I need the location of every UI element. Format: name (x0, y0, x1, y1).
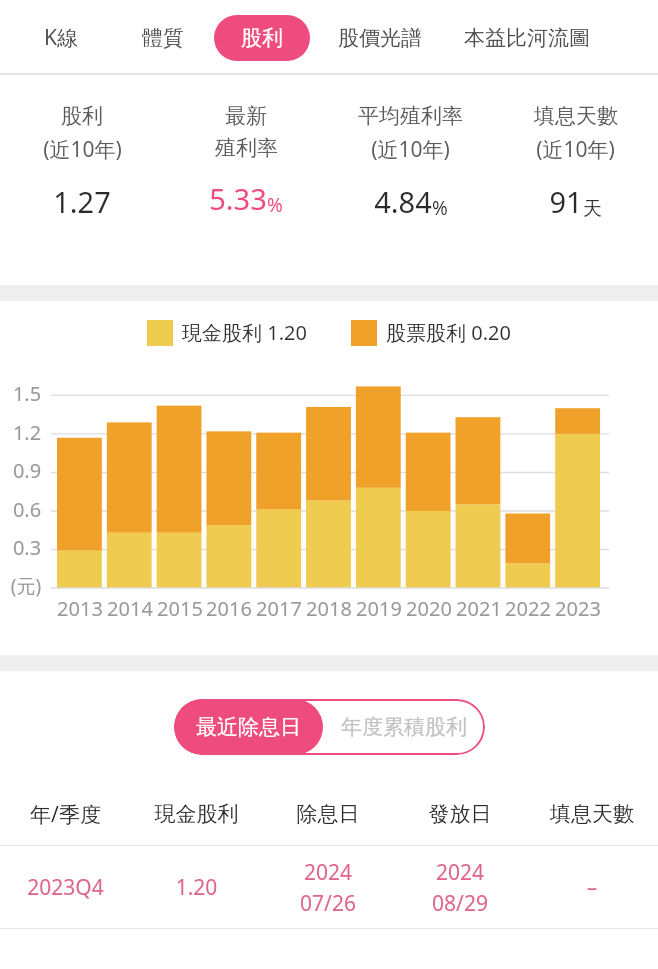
button[interactable]: 體質 (128, 17, 198, 59)
staticText: 體質 (142, 25, 184, 51)
staticText: 股票股利 0.20 (386, 319, 511, 346)
staticText: 發放日 (394, 801, 526, 827)
staticText: (近10年) (536, 135, 615, 164)
staticText: 2018 (304, 595, 354, 622)
staticText: 年度累積股利 (341, 714, 467, 740)
staticText: 填息天數 (526, 801, 658, 827)
button[interactable]: 最新 (164, 103, 328, 218)
staticText: 2014 (105, 595, 155, 622)
button[interactable]: 股利 (0, 103, 164, 221)
staticText: 股利 (61, 103, 103, 129)
button[interactable]: 平均殖利率 (328, 103, 493, 221)
button[interactable]: K線 (30, 15, 92, 60)
staticText: 1.5 (4, 380, 50, 407)
staticText: % (267, 192, 283, 218)
staticText: 2021 (454, 595, 504, 622)
staticText: 0.3 (4, 534, 50, 561)
staticText: – (526, 873, 658, 902)
staticText: 本益比河流圖 (464, 25, 590, 51)
staticText: 2023 (553, 595, 603, 622)
staticText: 除息日 (262, 801, 394, 827)
staticText: 天 (583, 197, 602, 221)
staticText: 2022 (503, 595, 553, 622)
button[interactable]: 本益比河流圖 (456, 17, 598, 59)
staticText: 最新 (225, 103, 267, 129)
button[interactable]: 股利 (214, 15, 310, 61)
staticText: 2023Q4 (0, 873, 131, 902)
staticText: 2019 (354, 595, 404, 622)
staticText: 4.84 (374, 182, 432, 221)
staticText: 2020 (404, 595, 454, 622)
staticText: 股價光譜 (338, 25, 422, 51)
staticText: 2024 08/29 (394, 858, 526, 917)
staticText: 殖利率 (215, 135, 278, 161)
staticText: 1.2 (4, 419, 50, 446)
staticText: 2016 (204, 595, 254, 622)
staticText: 2015 (155, 595, 205, 622)
staticText: 平均殖利率 (358, 103, 463, 129)
staticText: 5.33 (209, 179, 267, 218)
staticText: K線 (44, 23, 78, 52)
button[interactable]: 股價光譜 (326, 17, 434, 59)
button[interactable]: 2023Q4 (0, 846, 658, 928)
button[interactable]: 最近除息日 (174, 699, 323, 755)
staticText: 2013 (55, 595, 105, 622)
staticText: (近10年) (43, 135, 122, 164)
staticText: 0.9 (4, 457, 50, 484)
staticText: 股利 (241, 25, 283, 51)
staticText: 現金股利 (131, 801, 262, 827)
button[interactable]: 填息天數 (493, 103, 658, 221)
staticText: 1.27 (53, 182, 111, 221)
staticText: 0.6 (4, 496, 50, 523)
staticText: 年/季度 (0, 800, 131, 829)
staticText: 現金股利 1.20 (182, 319, 307, 346)
staticText: (元) (0, 573, 52, 599)
staticText: (近10年) (371, 135, 450, 164)
staticText: 1.20 (131, 873, 262, 902)
button[interactable]: 年度累積股利 (323, 699, 485, 755)
staticText: 2024 07/26 (262, 858, 394, 917)
staticText: 填息天數 (534, 103, 618, 129)
staticText: % (432, 195, 448, 221)
staticText: 91 (549, 182, 583, 221)
staticText: 最近除息日 (196, 714, 301, 740)
button[interactable]: 現金股利 1.20 (147, 319, 307, 346)
button[interactable]: 股票股利 0.20 (351, 319, 511, 346)
staticText: 2017 (254, 595, 304, 622)
